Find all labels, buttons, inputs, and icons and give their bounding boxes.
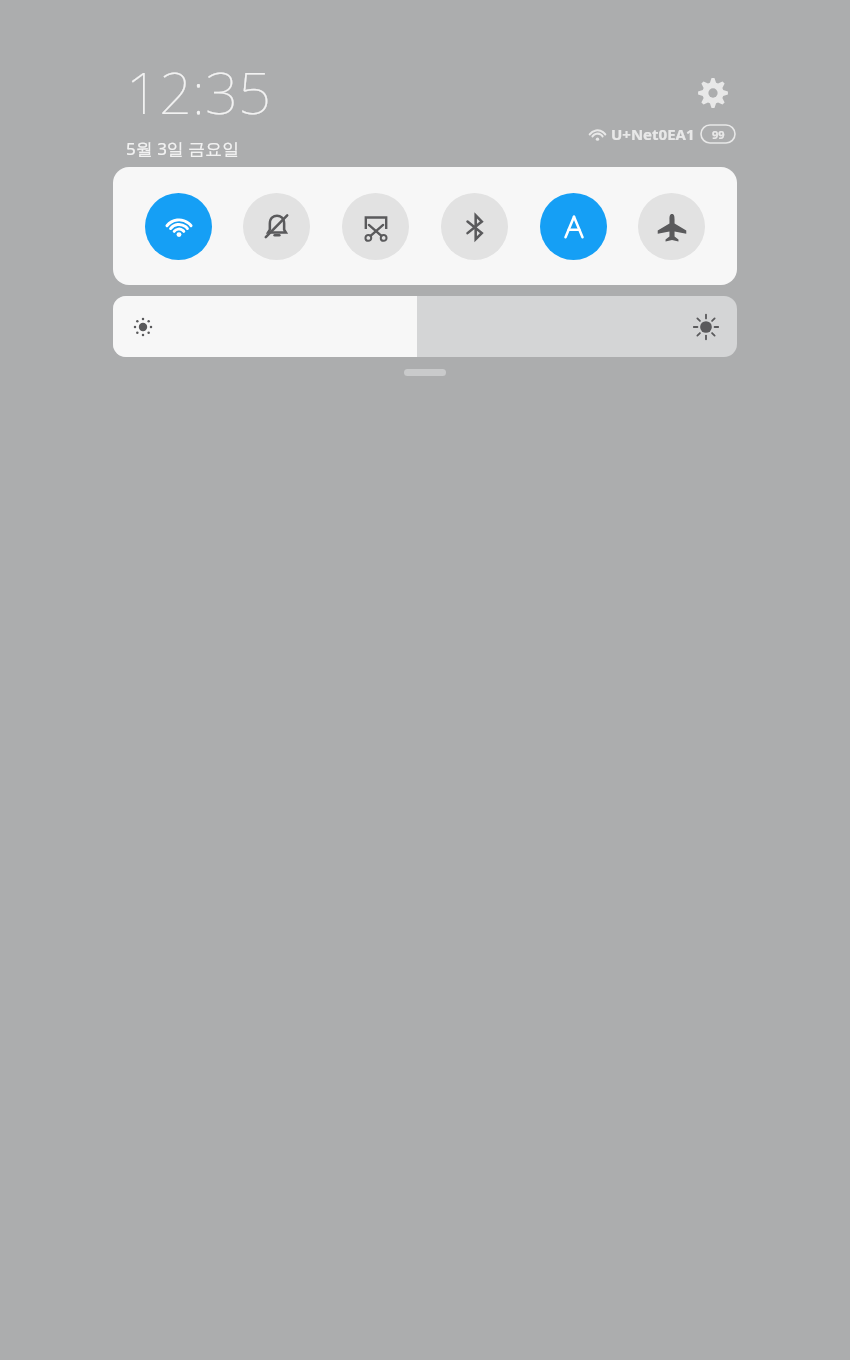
button[interactable]: Bluetooth xyxy=(441,193,508,260)
button[interactable]: Screenshot xyxy=(342,193,409,260)
button[interactable]: Settings xyxy=(690,70,736,116)
button[interactable]: Airplane mode xyxy=(638,193,705,260)
button[interactable]: Wi-Fi xyxy=(145,193,212,260)
button[interactable]: Mute xyxy=(243,193,310,260)
button[interactable]: Brightness xyxy=(113,296,737,357)
staticText: 12:35 xyxy=(126,52,272,131)
staticText: 5월 3일 금요일 xyxy=(126,137,240,160)
staticText: 99 xyxy=(712,127,725,142)
staticText: U+Net0EA1 xyxy=(611,124,695,144)
button[interactable]: Auto brightness xyxy=(540,193,607,260)
button[interactable]: Expand panel xyxy=(404,369,446,376)
